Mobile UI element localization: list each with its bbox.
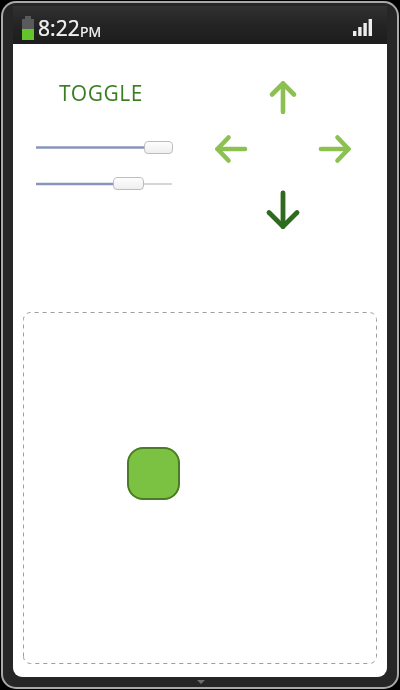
button[interactable]	[315, 132, 355, 166]
button[interactable]	[31, 172, 181, 196]
button[interactable]	[31, 136, 181, 160]
button[interactable]: TOGGLE	[59, 79, 143, 108]
button[interactable]	[264, 186, 302, 234]
button[interactable]	[211, 132, 251, 166]
staticText: 8:22	[38, 14, 80, 43]
staticText: PM	[80, 22, 102, 41]
staticText: TOGGLE	[59, 79, 143, 108]
button[interactable]	[266, 76, 300, 118]
button[interactable]	[127, 447, 180, 500]
